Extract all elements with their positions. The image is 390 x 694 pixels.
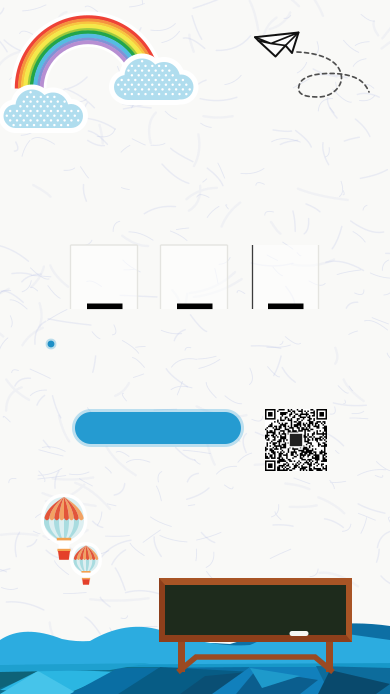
button[interactable]: Verification code xyxy=(0,0,390,694)
button[interactable] xyxy=(72,409,244,447)
